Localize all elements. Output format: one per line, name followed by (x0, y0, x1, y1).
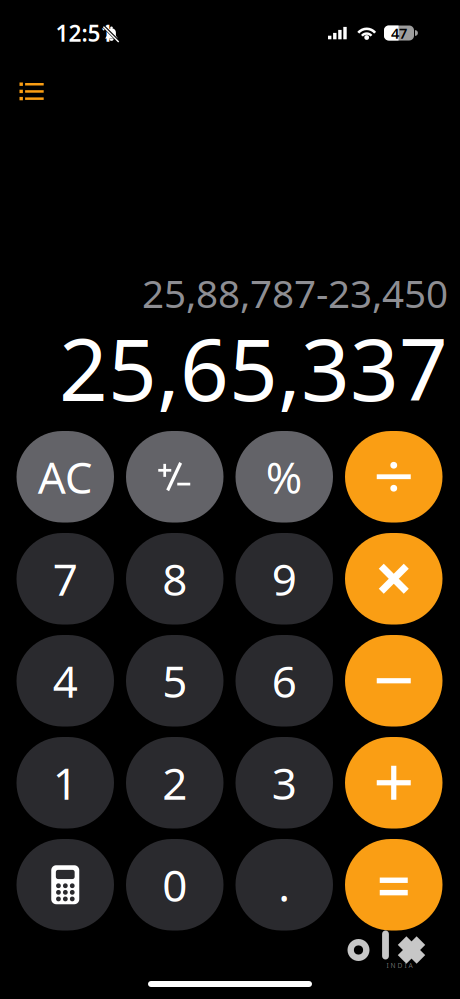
staticText: 3 (272, 753, 297, 812)
staticText: 5 (162, 651, 187, 710)
button[interactable]: Plus (345, 737, 442, 828)
button[interactable]: 0 (126, 839, 223, 930)
staticText: 1 (53, 753, 78, 812)
staticText: 47 (391, 23, 407, 43)
button[interactable]: AC (16, 431, 114, 522)
button[interactable]: Calculator (16, 839, 114, 930)
button[interactable]: . (235, 839, 333, 930)
staticText: I N D I A (386, 961, 412, 970)
button[interactable]: Equals (345, 839, 442, 930)
button[interactable]: 1 (16, 737, 114, 828)
button[interactable]: 5 (126, 635, 223, 726)
button[interactable]: 9 (235, 533, 333, 624)
staticText: 8 (162, 549, 187, 608)
button[interactable]: Plus minus (126, 431, 223, 522)
staticText: 9 (272, 549, 297, 608)
staticText: 25,88,787-23,450 (142, 267, 448, 319)
staticText: 7 (53, 549, 78, 608)
button[interactable]: 7 (16, 533, 114, 624)
button[interactable]: % (235, 431, 333, 522)
staticText: 6 (272, 651, 297, 710)
button[interactable]: 2 (126, 737, 223, 828)
button[interactable]: 6 (235, 635, 333, 726)
button[interactable]: 3 (235, 737, 333, 828)
staticText: 0 (162, 855, 187, 914)
button[interactable]: Multiply (345, 533, 442, 624)
staticText: 12:51 (55, 18, 113, 48)
button[interactable]: Minus (345, 635, 442, 726)
staticText: 25,65,337 (59, 311, 448, 425)
button[interactable]: History (7, 70, 56, 112)
staticText: AC (38, 447, 93, 506)
staticText: 2 (162, 753, 187, 812)
staticText: 4 (53, 651, 78, 710)
button[interactable]: 8 (126, 533, 223, 624)
staticText: . (278, 855, 290, 914)
staticText: % (266, 447, 303, 506)
button[interactable]: Divide (345, 431, 442, 522)
button[interactable]: 4 (16, 635, 114, 726)
